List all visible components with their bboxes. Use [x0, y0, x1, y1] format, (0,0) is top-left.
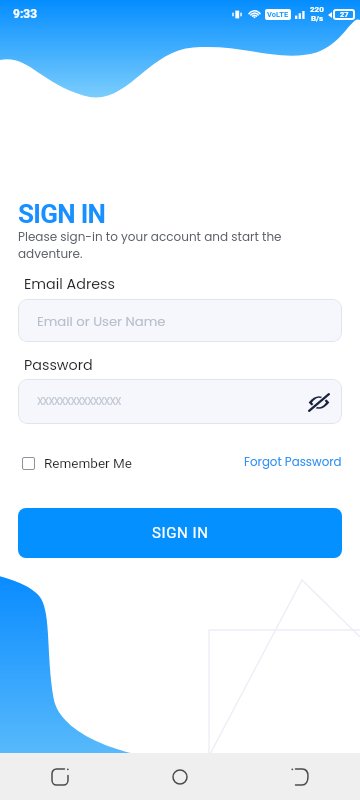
button[interactable]: Email or User Name	[18, 299, 342, 342]
button[interactable]: Show password	[304, 387, 334, 417]
staticText: 220	[310, 5, 324, 14]
staticText: Password	[24, 355, 93, 375]
staticText: SIGN IN	[152, 524, 209, 542]
button[interactable]: Forgot Password	[244, 449, 342, 476]
staticText: 27	[340, 10, 349, 19]
button[interactable]: SIGN IN	[18, 508, 342, 558]
staticText: Forgot Password	[244, 454, 342, 471]
staticText: XXXXXXXXXXXXXXX	[37, 394, 121, 409]
button[interactable]: Home	[120, 753, 240, 800]
button[interactable]: Remember Me	[18, 450, 136, 476]
staticText: Email or User Name	[37, 312, 166, 330]
staticText: B/s	[311, 14, 324, 23]
button[interactable]: Back	[240, 753, 360, 800]
staticText: VoLTE	[267, 10, 289, 19]
staticText: Remember Me	[44, 455, 132, 471]
staticText: 9:33	[13, 7, 38, 21]
staticText: SIGN IN	[18, 199, 106, 229]
staticText: Email Adress	[24, 274, 115, 294]
staticText: Please sign-in to your account and start…	[18, 228, 293, 262]
button[interactable]: Recent apps	[0, 753, 120, 800]
button[interactable]: XXXXXXXXXXXXXXX	[18, 379, 342, 424]
